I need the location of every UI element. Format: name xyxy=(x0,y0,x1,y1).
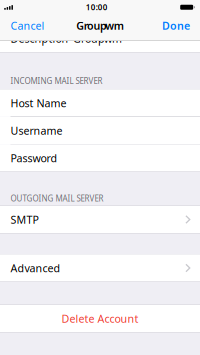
staticText: Advanced xyxy=(10,261,60,275)
staticText: Cancel xyxy=(10,18,44,33)
staticText: Description xyxy=(10,31,68,46)
staticText: Host Name xyxy=(10,96,66,110)
button[interactable]: Done xyxy=(156,13,200,37)
button[interactable]: Description xyxy=(0,25,200,52)
staticText: Groupwm xyxy=(73,31,122,46)
staticText: OUTGOING MAIL SERVER xyxy=(10,193,103,204)
staticText: SMTP xyxy=(10,212,38,227)
staticText: Password xyxy=(10,151,57,165)
staticText: INCOMING MAIL SERVER xyxy=(10,75,102,86)
staticText: Delete Account xyxy=(61,311,138,326)
staticText: Username xyxy=(10,123,62,138)
button[interactable]: Password xyxy=(0,144,200,171)
staticText: Done xyxy=(162,18,190,33)
button[interactable]: Host Name xyxy=(0,89,200,116)
staticText: 10:00 xyxy=(86,2,108,12)
button[interactable]: SMTP xyxy=(0,206,200,233)
button[interactable]: Cancel xyxy=(0,13,50,37)
button[interactable]: Advanced xyxy=(0,254,200,281)
staticText: Groupwm xyxy=(76,18,124,33)
button[interactable]: Delete Account xyxy=(0,305,200,332)
button[interactable]: Username xyxy=(0,117,200,144)
